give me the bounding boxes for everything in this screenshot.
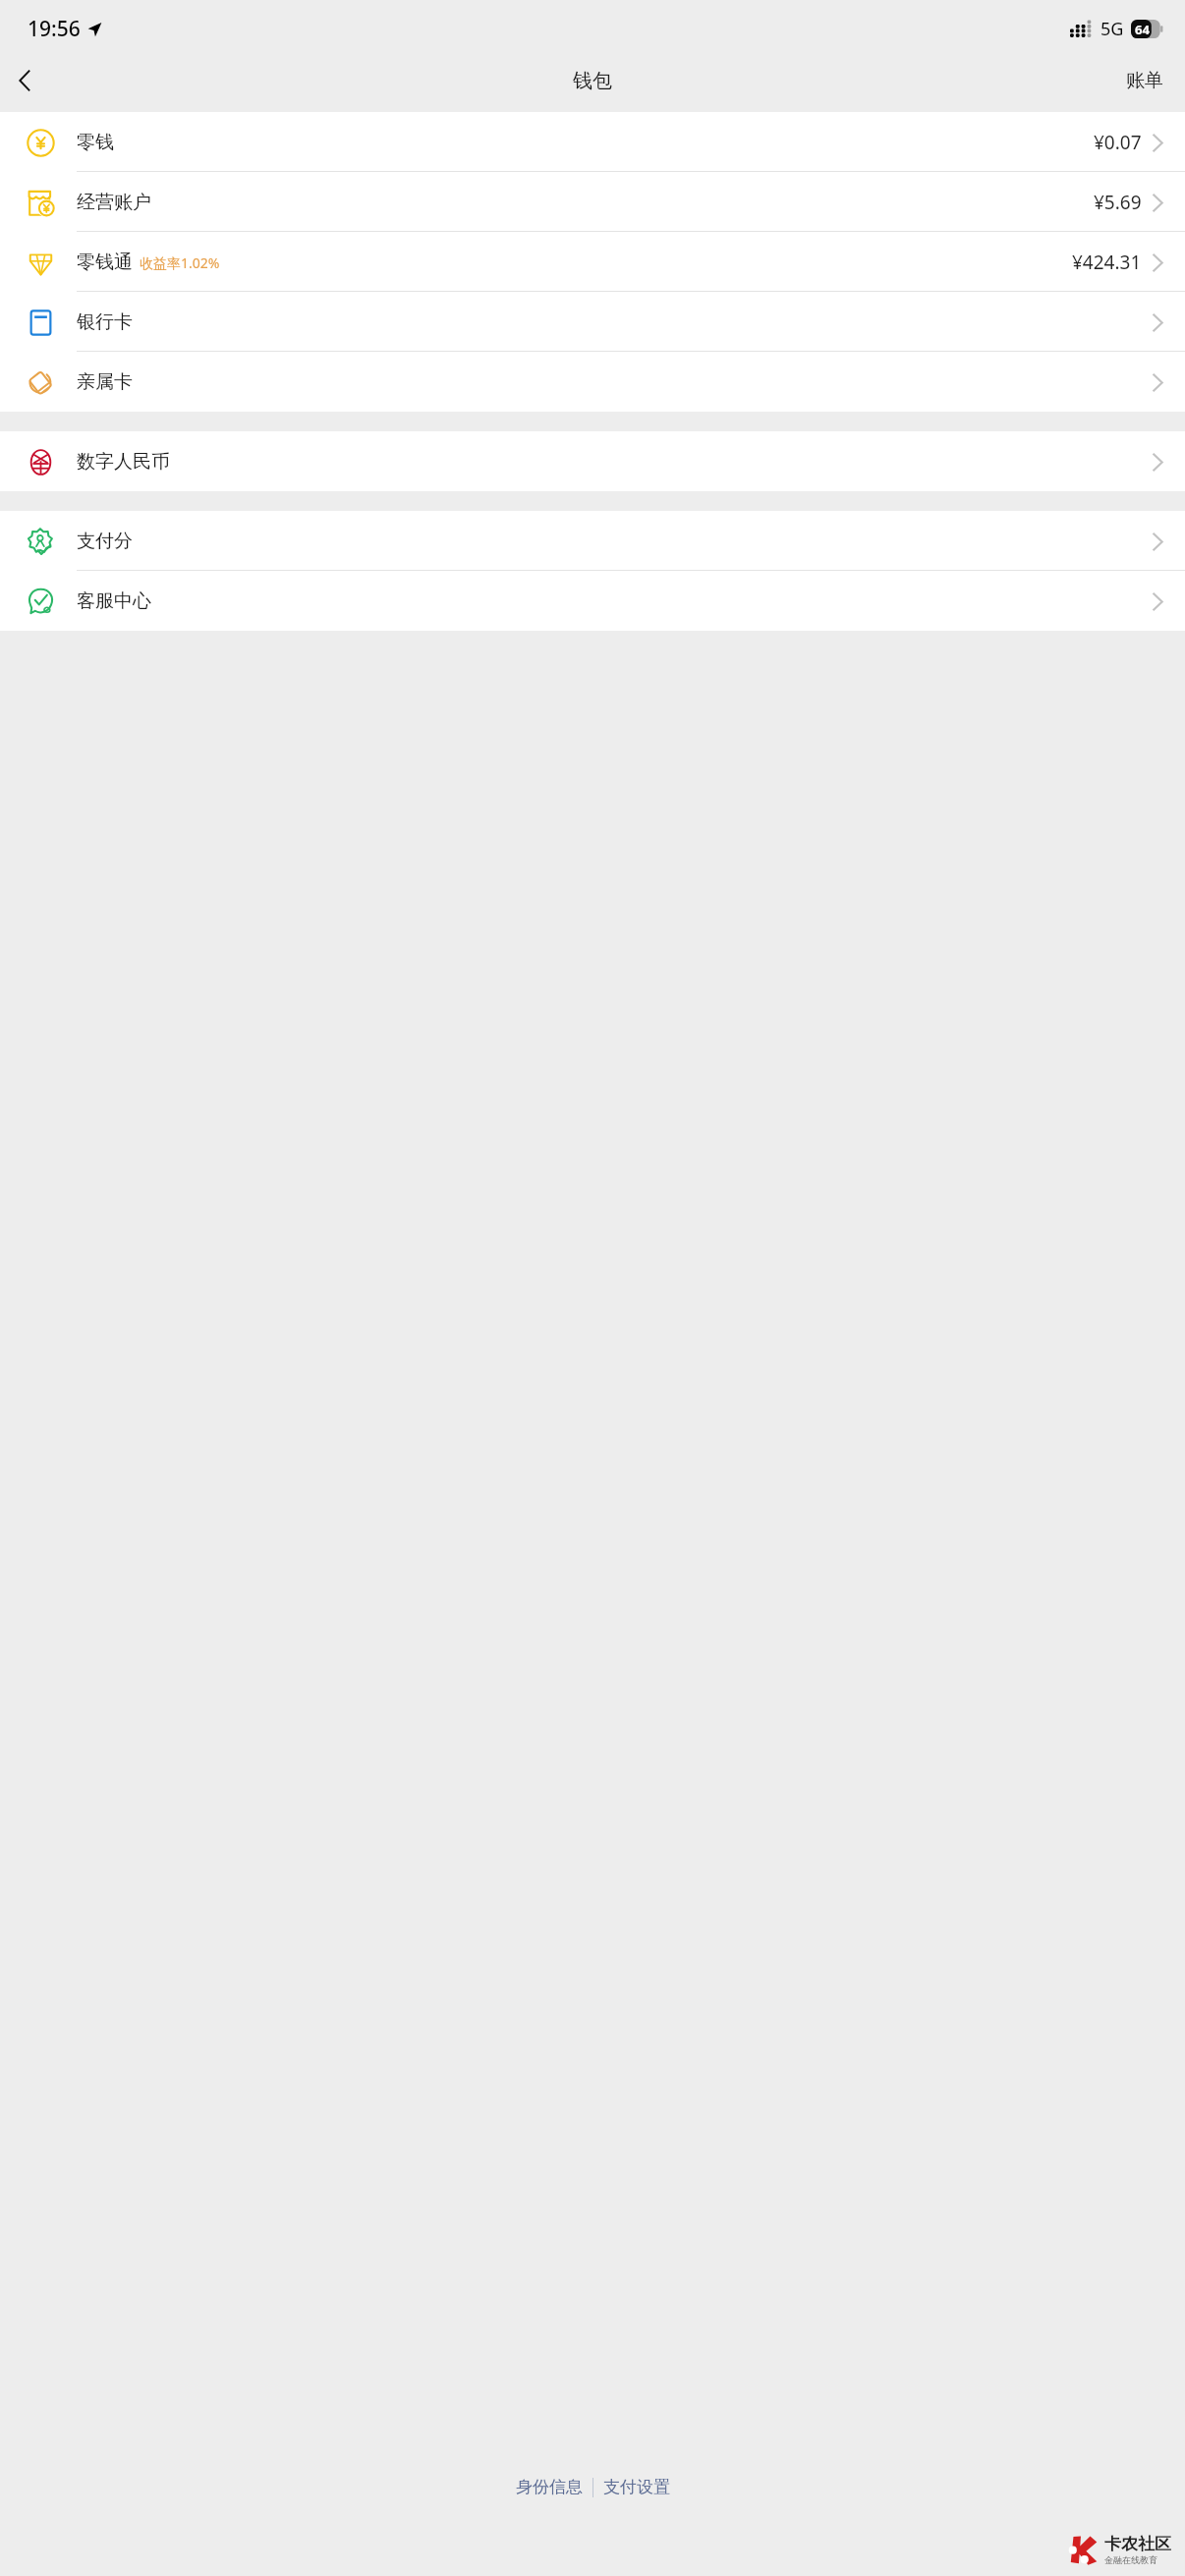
button[interactable]: 银行卡 bbox=[0, 292, 1185, 352]
staticText: 支付设置 bbox=[603, 2477, 670, 2497]
button[interactable]: 支付分 bbox=[0, 511, 1185, 571]
button[interactable]: 支付设置 bbox=[593, 2471, 680, 2503]
staticText: 零钱 bbox=[77, 131, 114, 154]
staticText: ¥424.31 bbox=[1072, 250, 1142, 275]
staticText: 64 bbox=[1135, 21, 1150, 38]
button[interactable]: 身份信息 bbox=[506, 2471, 592, 2503]
staticText: 经营账户 bbox=[77, 191, 151, 214]
staticText: ¥0.07 bbox=[1094, 130, 1142, 155]
button[interactable]: 账单 bbox=[1104, 61, 1185, 100]
staticText: 5G bbox=[1100, 17, 1124, 41]
staticText: 数字人民币 bbox=[77, 450, 170, 474]
staticText: 银行卡 bbox=[77, 310, 133, 334]
staticText: 客服中心 bbox=[77, 589, 151, 613]
staticText: ¥5.69 bbox=[1094, 190, 1142, 215]
staticText: 金融在线教育 bbox=[1104, 2554, 1157, 2565]
button[interactable]: 零钱 bbox=[0, 112, 1185, 172]
button[interactable]: Back bbox=[0, 57, 51, 104]
button[interactable]: 亲属卡 bbox=[0, 352, 1185, 412]
button[interactable]: 数字人民币 bbox=[0, 431, 1185, 491]
staticText: 亲属卡 bbox=[77, 370, 133, 394]
button[interactable]: 客服中心 bbox=[0, 571, 1185, 631]
staticText: 身份信息 bbox=[516, 2477, 583, 2497]
staticText: 钱包 bbox=[573, 69, 612, 93]
staticText: 收益率1.02% bbox=[140, 253, 220, 272]
staticText: 零钱通 bbox=[77, 251, 133, 274]
staticText: 卡农社区 bbox=[1104, 2534, 1171, 2554]
staticText: 账单 bbox=[1126, 69, 1163, 92]
button[interactable]: 零钱通 bbox=[0, 232, 1185, 292]
button[interactable]: 经营账户 bbox=[0, 172, 1185, 232]
staticText: 19:56 bbox=[28, 15, 81, 43]
staticText: 支付分 bbox=[77, 530, 133, 553]
